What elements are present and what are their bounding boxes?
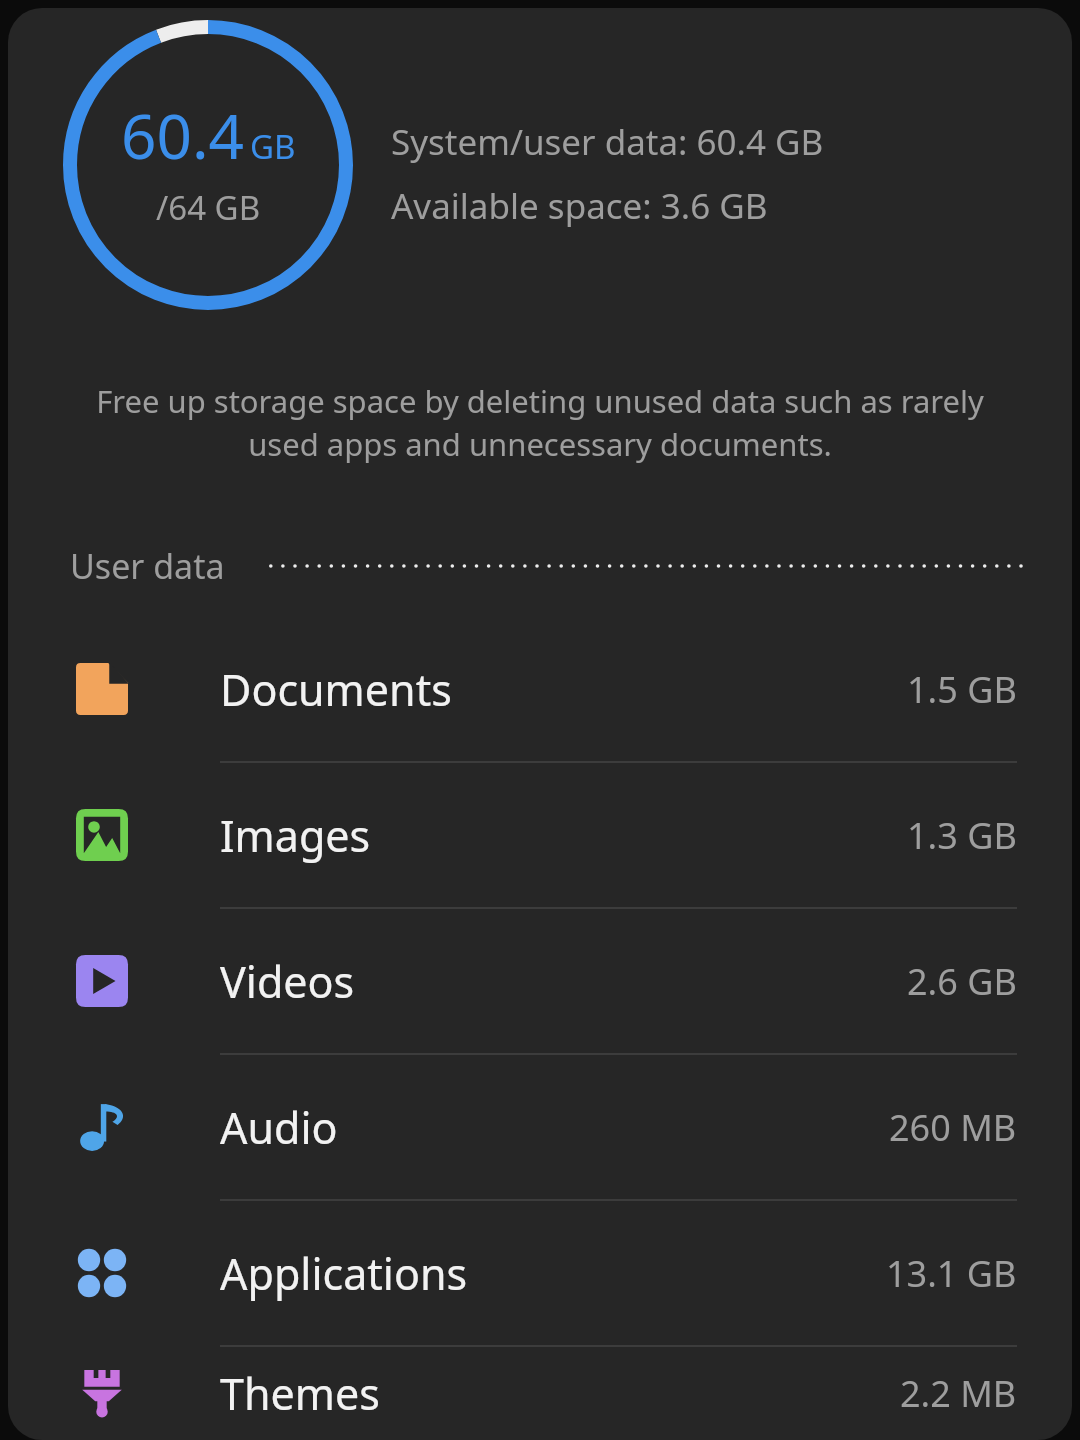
other: Audio [76,1101,128,1153]
staticText: User data [70,543,225,589]
button[interactable]: Themes [8,1347,1072,1440]
staticText: 2.2 MB [900,1369,1017,1418]
staticText: GB [250,124,296,169]
staticText: Themes [220,1364,900,1423]
staticText: Images [220,806,907,865]
staticText: Audio [220,1098,889,1157]
other: Videos [76,955,128,1007]
other: Images [76,809,128,861]
staticText: 13.1 GB [886,1249,1017,1298]
button[interactable]: Documents [8,617,1072,763]
staticText: 60.4 [121,93,245,177]
other: Documents [76,663,128,715]
button[interactable]: Audio [8,1055,1072,1201]
staticText: Videos [220,952,907,1011]
button[interactable]: Images [8,763,1072,909]
button[interactable]: Videos [8,909,1072,1055]
staticText: Available space: 3.6 GB [391,182,768,230]
staticText: /64 GB [156,185,261,230]
other: Applications [76,1247,128,1299]
staticText: Documents [220,660,907,719]
staticText: 1.5 GB [907,665,1017,714]
staticText: 260 MB [889,1103,1017,1152]
button[interactable]: Applications [8,1201,1072,1347]
staticText: Free up storage space by deleting unused… [78,380,1002,465]
staticText: 2.6 GB [907,957,1017,1006]
staticText: System/user data: 60.4 GB [391,118,824,166]
staticText: 1.3 GB [907,811,1017,860]
staticText: Applications [220,1244,886,1303]
other: Themes [76,1368,128,1420]
